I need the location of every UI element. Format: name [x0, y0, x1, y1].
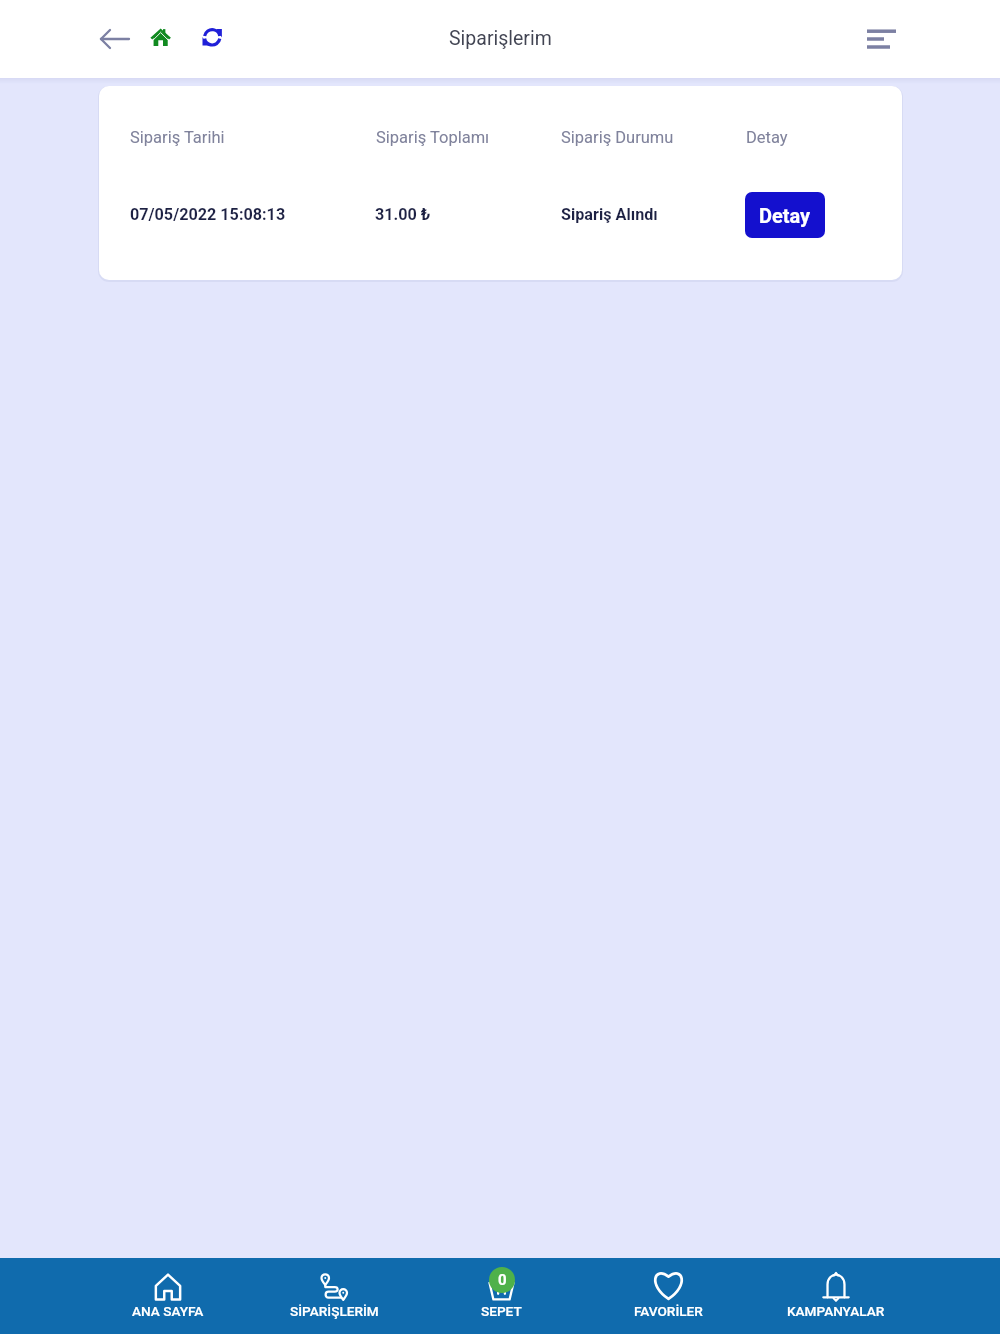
staticText: ANA SAYFA [132, 1303, 204, 1319]
staticText: Sipariş Toplamı [376, 128, 490, 147]
button[interactable]: FAVORİLER [585, 1258, 752, 1334]
staticText: 0 [498, 1271, 507, 1289]
button[interactable]: Menu [855, 17, 907, 61]
staticText: Sipariş Durumu [561, 128, 674, 147]
button[interactable]: Detay [745, 192, 825, 238]
staticText: Sipariş Alındı [561, 205, 658, 224]
button[interactable]: SİPARİŞLERİM [251, 1258, 418, 1334]
staticText: Detay [759, 204, 811, 227]
button[interactable]: Home [145, 21, 177, 53]
staticText: Sipariş Tarihi [130, 128, 225, 147]
staticText: Siparişlerim [449, 27, 552, 50]
staticText: FAVORİLER [634, 1303, 703, 1319]
button[interactable]: KAMPANYALAR [752, 1258, 919, 1334]
button[interactable]: Back [93, 17, 137, 61]
staticText: SEPET [481, 1303, 522, 1319]
button[interactable]: Refresh [196, 21, 228, 53]
staticText: 31.00 ₺ [375, 205, 431, 224]
staticText: 07/05/2022 15:08:13 [130, 205, 286, 224]
staticText: KAMPANYALAR [787, 1303, 885, 1319]
button[interactable]: ANA SAYFA [85, 1258, 251, 1334]
button[interactable]: 0 [418, 1258, 585, 1334]
staticText: SİPARİŞLERİM [290, 1303, 379, 1319]
staticText: Detay [746, 128, 788, 147]
